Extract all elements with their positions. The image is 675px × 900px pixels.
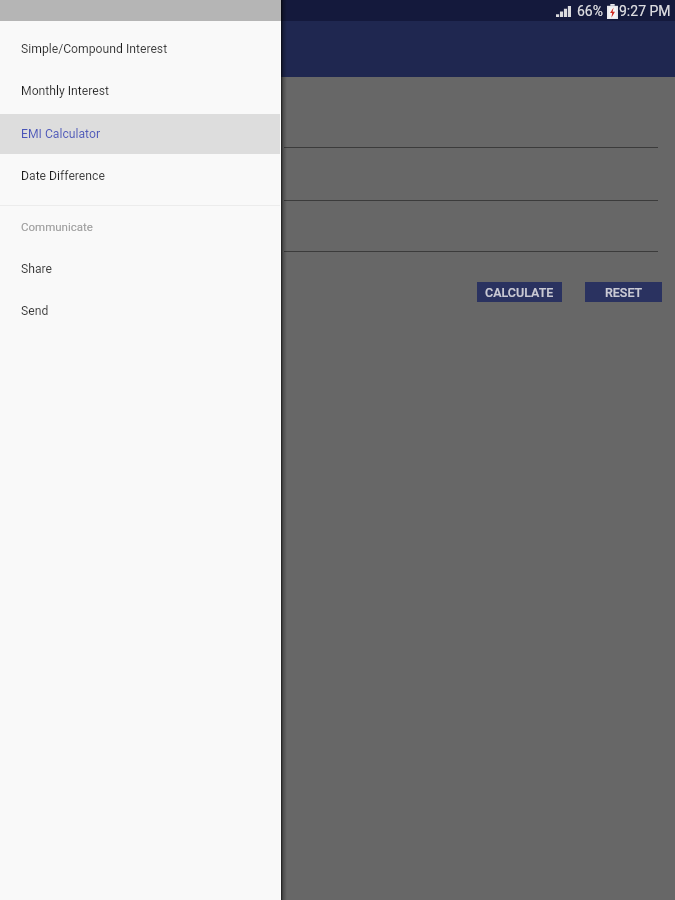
staticText: Date Difference xyxy=(21,169,105,183)
button[interactable]: Monthly Interest xyxy=(0,71,281,111)
staticText: 9:27 PM xyxy=(619,3,671,19)
staticText: CALCULATE xyxy=(485,285,554,300)
staticText: RESET xyxy=(605,285,643,300)
other: Battery charging xyxy=(607,4,618,19)
staticText: EMI Calculator xyxy=(21,127,101,141)
staticText: Share xyxy=(21,262,53,276)
other: Signal strength xyxy=(556,6,571,17)
staticText: Monthly Interest xyxy=(21,84,110,98)
button[interactable]: Send xyxy=(0,291,281,331)
button[interactable]: RESET xyxy=(585,282,662,302)
staticText: 66% xyxy=(577,3,603,19)
button[interactable]: Date Difference xyxy=(0,156,281,196)
button[interactable]: EMI Calculator xyxy=(0,114,281,154)
staticText: Simple/Compound Interest xyxy=(21,42,168,56)
button[interactable]: Simple/Compound Interest xyxy=(0,29,281,69)
button[interactable]: CALCULATE xyxy=(477,282,562,302)
staticText: Communicate xyxy=(21,220,93,233)
staticText: Send xyxy=(21,304,49,318)
button[interactable]: Share xyxy=(0,249,281,289)
